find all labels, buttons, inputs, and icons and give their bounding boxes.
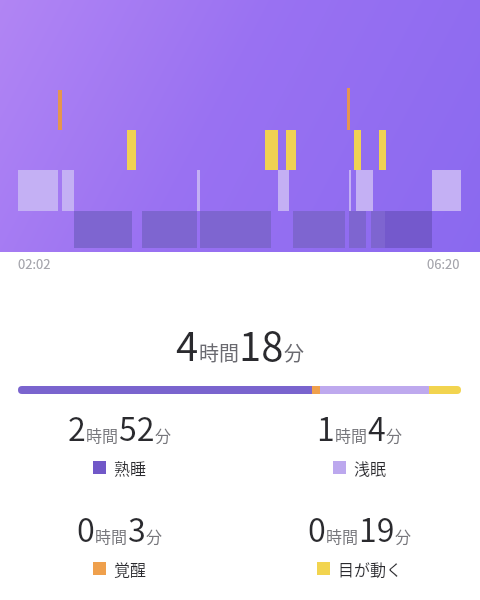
staticText: 時間 (335, 423, 368, 446)
staticText: 0 (308, 505, 326, 551)
staticText: 時間 (199, 338, 239, 367)
staticText: 熟睡 (114, 456, 147, 479)
staticText: 分 (155, 423, 172, 446)
staticText: 分 (146, 524, 163, 547)
button[interactable]: 0 (240, 505, 480, 580)
staticText: 分 (284, 338, 304, 367)
staticText: 浅眠 (354, 456, 387, 479)
staticText: 目が動く (338, 557, 403, 580)
staticText: 52 (119, 404, 155, 450)
staticText: 19 (359, 505, 395, 551)
staticText: 4 (368, 404, 386, 450)
staticText: 時間 (95, 524, 128, 547)
staticText: 分 (386, 423, 403, 446)
button[interactable] (18, 386, 461, 394)
staticText: 3 (128, 505, 146, 551)
staticText: 2 (68, 404, 86, 450)
staticText: 時間 (86, 423, 119, 446)
staticText: 覚醒 (114, 557, 147, 580)
staticText: 4 (176, 315, 199, 373)
button[interactable]: 0 (0, 505, 240, 580)
staticText: 1 (317, 404, 335, 450)
button[interactable]: 1 (240, 404, 480, 479)
button[interactable]: 2 (0, 404, 240, 479)
staticText: 18 (239, 315, 284, 373)
staticText: 06:20 (427, 254, 460, 273)
staticText: 0 (77, 505, 95, 551)
staticText: 分 (395, 524, 412, 547)
staticText: 02:02 (18, 254, 51, 273)
staticText: 時間 (326, 524, 359, 547)
